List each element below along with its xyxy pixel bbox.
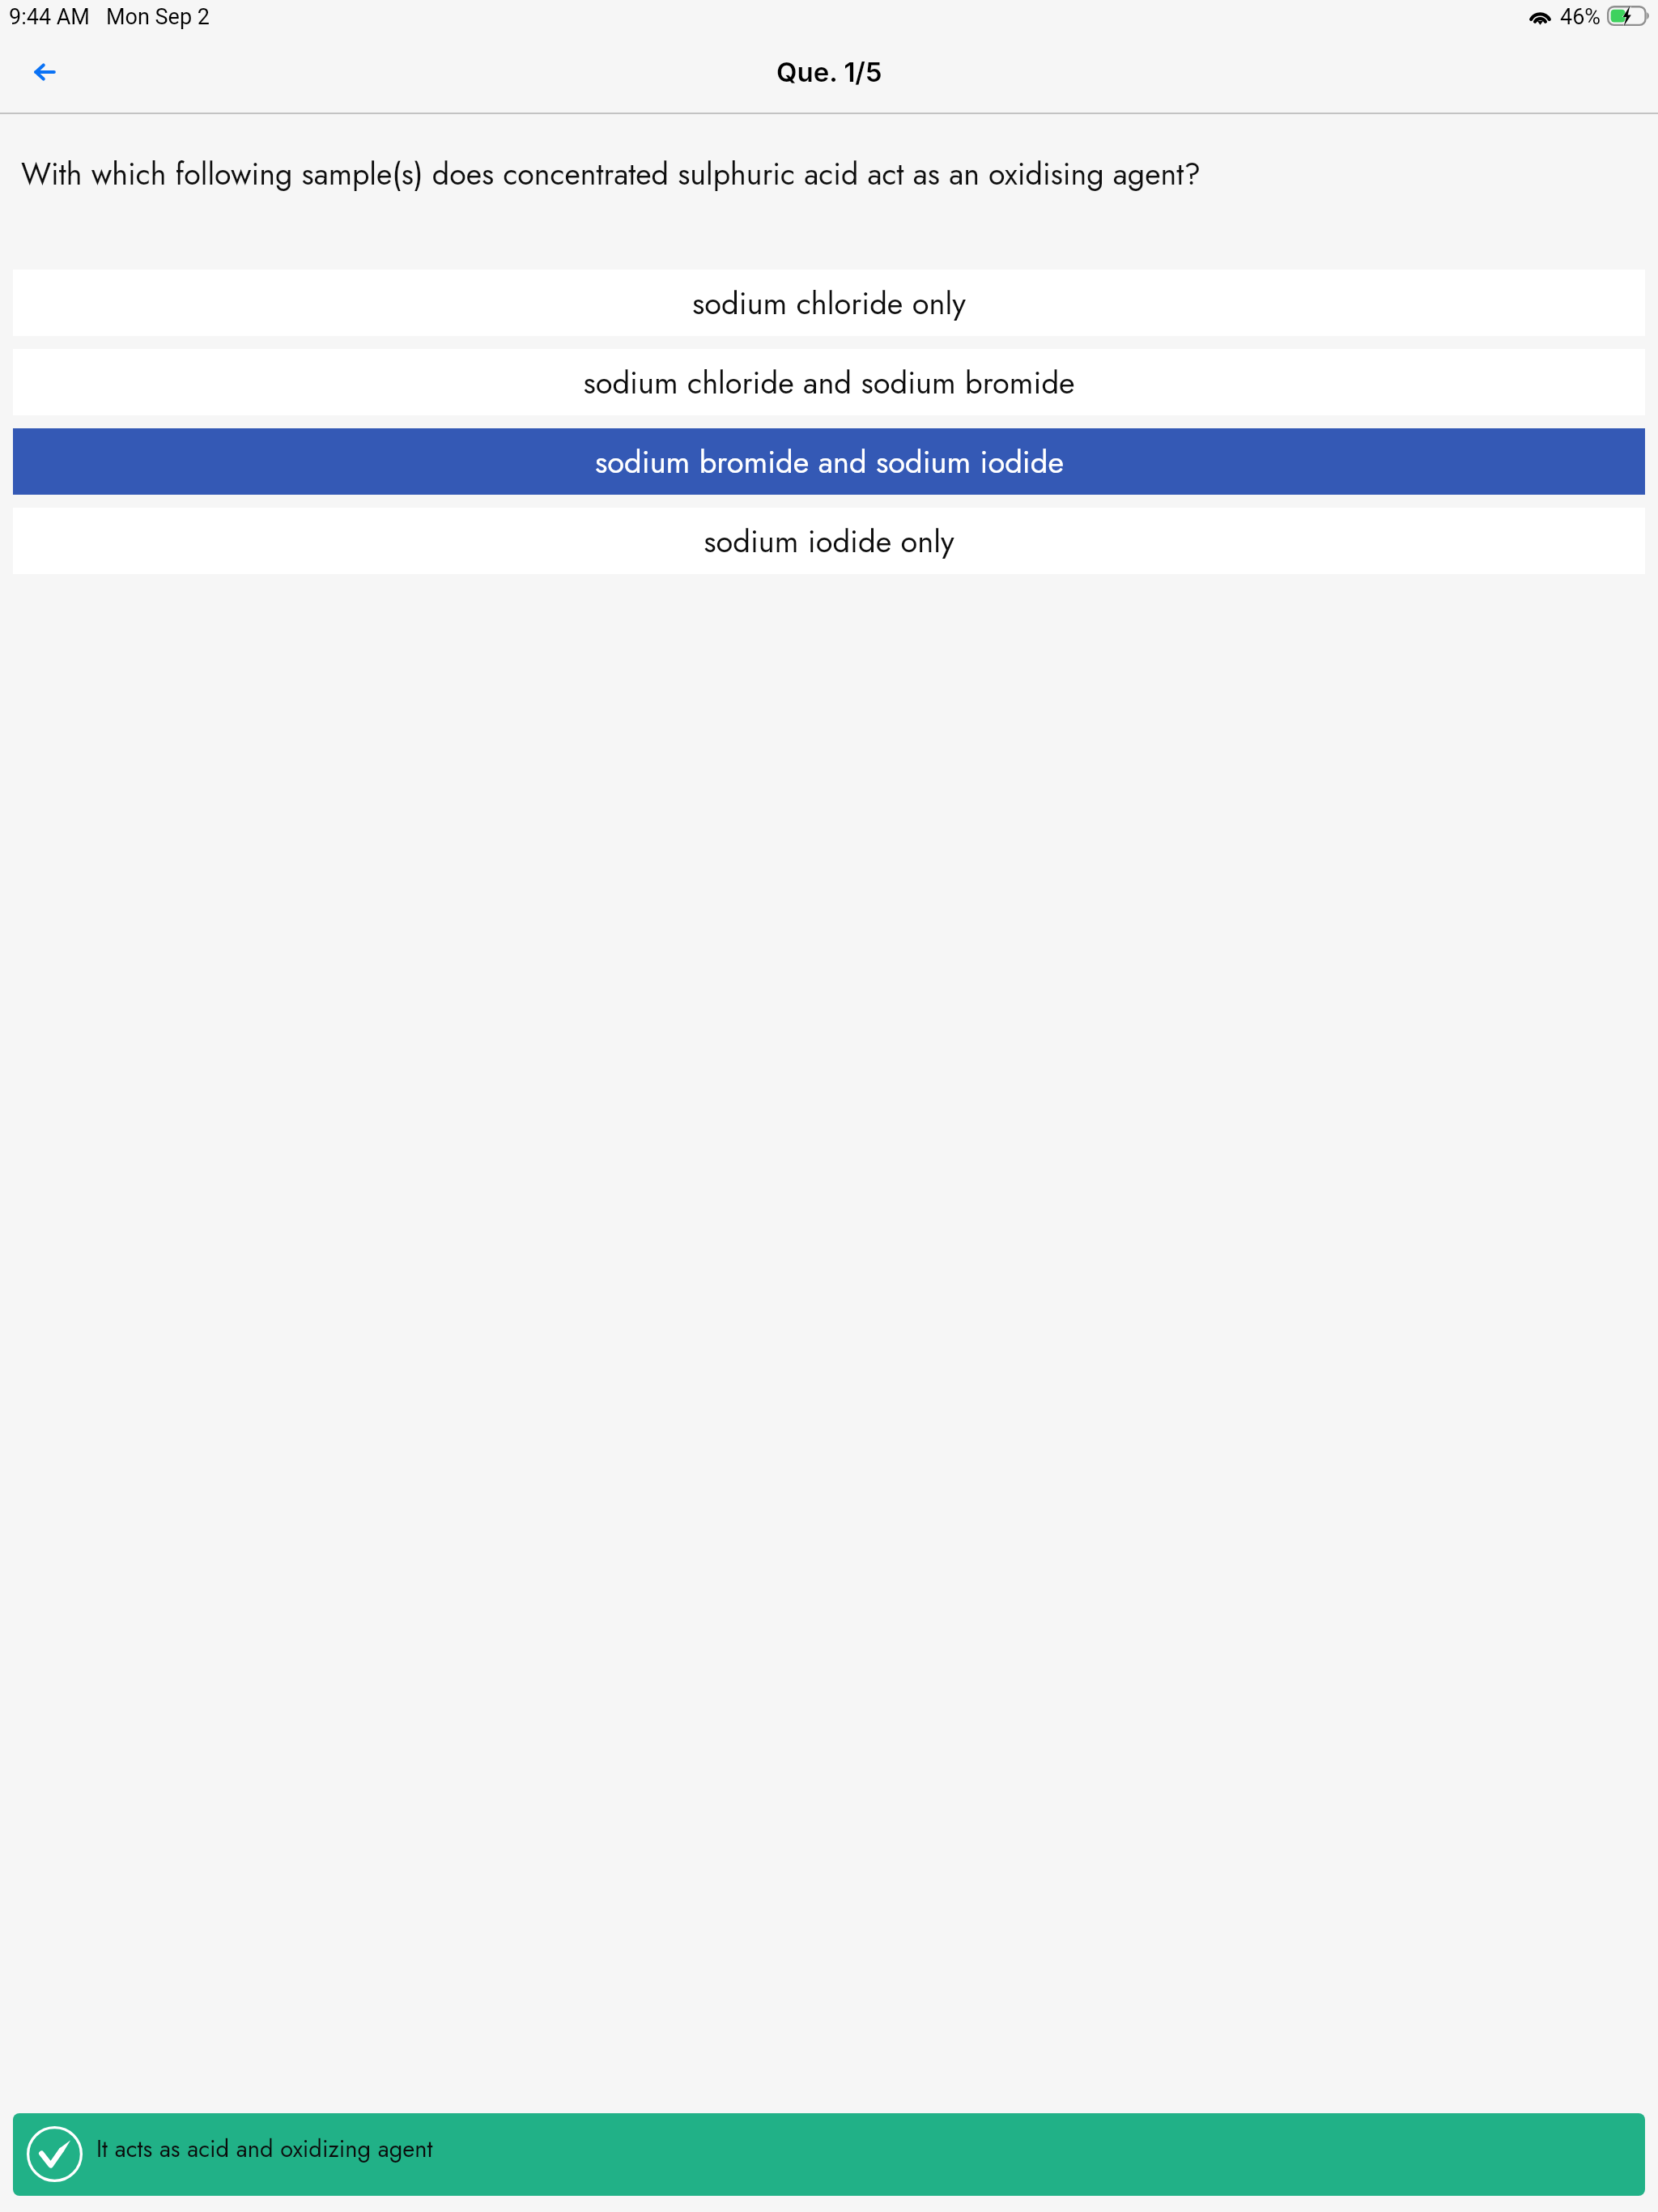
staticText: sodium chloride and sodium bromide bbox=[583, 360, 1075, 405]
button[interactable]: sodium chloride and sodium bromide bbox=[13, 349, 1645, 415]
staticText: sodium bromide and sodium iodide bbox=[595, 440, 1064, 484]
button[interactable]: sodium chloride only bbox=[13, 270, 1645, 336]
button[interactable]: Back bbox=[18, 45, 71, 99]
staticText: sodium iodide only bbox=[704, 519, 954, 564]
button[interactable]: sodium iodide only bbox=[13, 508, 1645, 574]
staticText: 46% bbox=[1560, 4, 1601, 30]
button[interactable]: sodium bromide and sodium iodide bbox=[13, 428, 1645, 495]
staticText: Que. 1/5 bbox=[776, 56, 882, 88]
staticText: 9:44 AM bbox=[9, 4, 90, 30]
staticText: Mon Sep 2 bbox=[106, 4, 210, 30]
button[interactable]: It acts as acid and oxidizing agent bbox=[13, 2113, 1645, 2196]
staticText: It acts as acid and oxidizing agent bbox=[96, 2132, 433, 2166]
staticText: With which following sample(s) does conc… bbox=[21, 152, 1658, 196]
staticText: sodium chloride only bbox=[692, 281, 966, 325]
